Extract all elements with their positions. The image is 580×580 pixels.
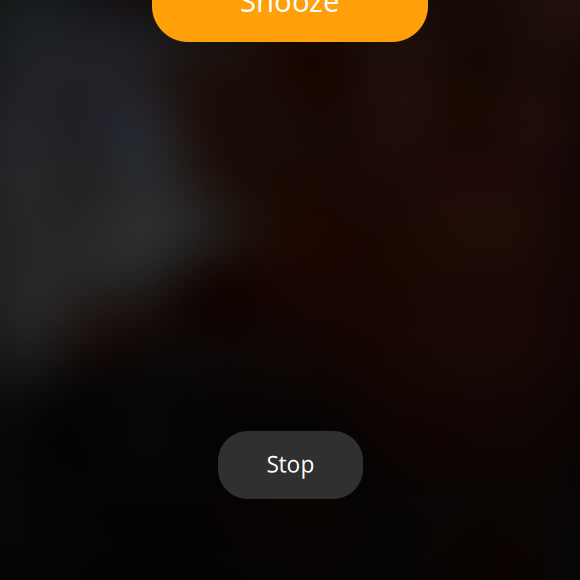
staticText: Snooze	[240, 0, 340, 20]
button[interactable]: Snooze	[152, 0, 428, 42]
button[interactable]: Stop	[218, 431, 363, 499]
staticText: Stop	[266, 449, 314, 479]
